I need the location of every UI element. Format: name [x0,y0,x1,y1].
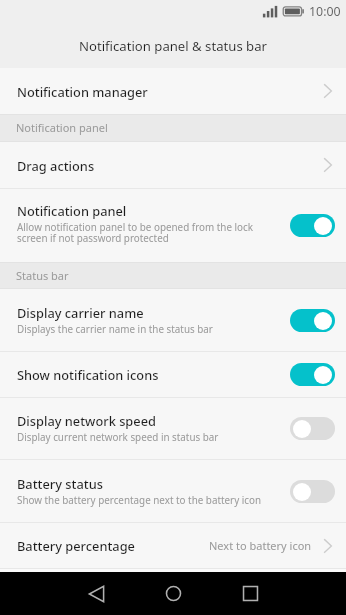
button[interactable]: Switch off [290,480,335,503]
staticText: Notification manager [17,83,148,100]
button[interactable]: Switch on [290,309,335,332]
staticText: Display network speed [17,412,156,429]
button[interactable]: Notification manager [0,68,346,114]
button[interactable]: Back [68,572,124,615]
staticText: Display current network speed in status … [17,430,219,443]
button[interactable]: Notification panel [0,189,346,262]
button[interactable]: Drag actions [0,142,346,188]
button[interactable]: Switch on [290,214,335,237]
staticText: Drag actions [17,157,95,174]
button[interactable]: Show notification icons [0,352,346,397]
staticText: Displays the carrier name in the status … [17,322,213,335]
button[interactable]: Battery status [0,460,346,522]
staticText: Battery status [17,475,103,492]
button[interactable]: Battery percentage [0,523,346,568]
button[interactable]: Display carrier name [0,289,346,351]
button[interactable]: Recents [222,572,278,615]
staticText: Next to battery icon [209,538,312,553]
button[interactable]: Home [145,572,201,615]
staticText: Allow notification panel to be opened fr… [17,220,253,245]
staticText: Notification panel [17,202,127,219]
staticText: Show the battery percentage next to the … [17,493,262,506]
button[interactable]: Display network speed [0,398,346,459]
staticText: Display carrier name [17,304,144,321]
staticText: Notification panel & status bar [79,37,267,55]
button[interactable]: Switch on [290,363,335,386]
staticText: Notification panel [16,120,108,135]
button[interactable]: Switch off [290,417,335,440]
staticText: 10:00 [309,3,341,20]
staticText: Status bar [16,268,69,283]
staticText: Show notification icons [17,366,159,383]
staticText: Battery percentage [17,537,135,554]
